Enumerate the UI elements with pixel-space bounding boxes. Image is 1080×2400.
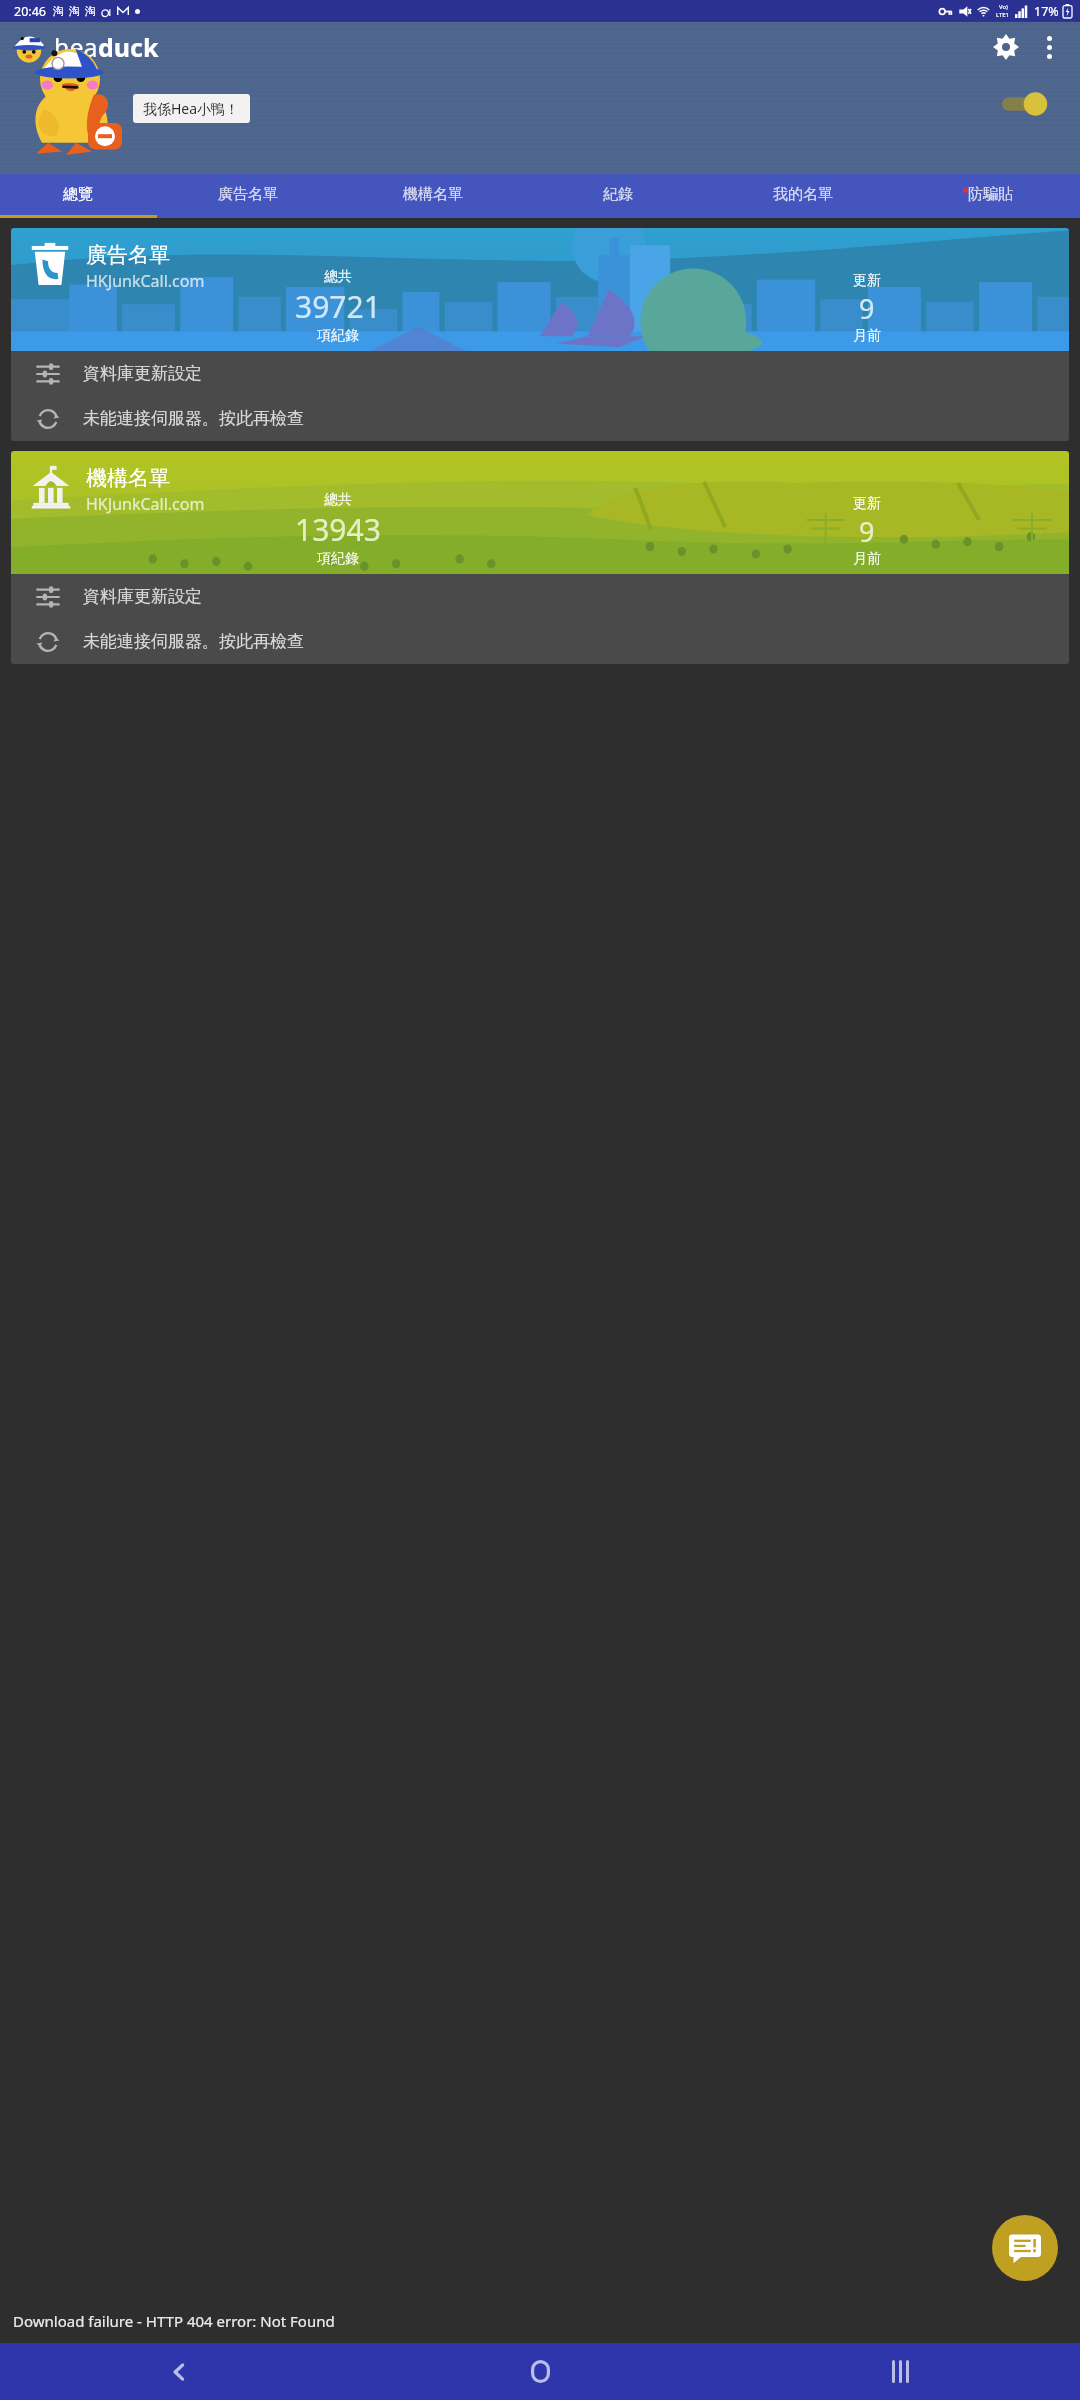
staticText: 資料庫更新設定	[83, 363, 202, 384]
staticText: LTE1	[996, 11, 1010, 19]
staticText: 更新	[853, 495, 881, 513]
staticText: 39721	[295, 286, 381, 327]
button[interactable]: 防騙貼	[895, 174, 1080, 215]
staticText: 資料庫更新設定	[83, 586, 202, 607]
staticText: Vo)	[999, 3, 1008, 11]
button[interactable]: Feedback	[992, 2215, 1058, 2281]
staticText: 20:46	[14, 3, 46, 20]
button[interactable]: More options	[1032, 30, 1066, 64]
button[interactable]: 機構名單	[11, 451, 1069, 574]
button[interactable]: Home	[360, 2343, 720, 2400]
button[interactable]: 廣告名單	[156, 174, 340, 215]
staticText: HKJunkCall.com	[86, 493, 205, 515]
staticText: 月前	[853, 327, 881, 345]
staticText: 淘	[53, 4, 64, 18]
button[interactable]: 資料庫更新設定	[11, 574, 1069, 619]
staticText: HKJunkCall.com	[86, 270, 205, 292]
staticText: 廣告名單	[86, 242, 170, 268]
staticText: 廣告名單	[218, 185, 278, 204]
staticText: 總共	[324, 491, 352, 509]
staticText: 機構名單	[403, 185, 463, 204]
staticText: 項紀錄	[317, 327, 359, 345]
staticText: 17%	[1034, 3, 1059, 20]
staticText: 紀錄	[603, 185, 633, 204]
staticText: 總覽	[63, 185, 93, 204]
staticText: 13943	[295, 509, 381, 550]
staticText: 淘	[69, 4, 80, 18]
staticText: 淘	[85, 4, 96, 18]
staticText: 未能連接伺服器。按此再檢查	[83, 631, 304, 652]
button[interactable]: Settings	[986, 27, 1026, 67]
staticText: 9	[859, 290, 875, 327]
button[interactable]: 我的名單	[710, 174, 895, 215]
button[interactable]: Toggle protection	[1002, 90, 1046, 118]
staticText: 我的名單	[773, 185, 833, 204]
button[interactable]: 未能連接伺服器。按此再檢查	[11, 396, 1069, 441]
staticText: 月前	[853, 550, 881, 568]
staticText: duck	[98, 30, 159, 64]
staticText: 項紀錄	[317, 550, 359, 568]
staticText: 防騙貼	[968, 185, 1013, 204]
button[interactable]: 資料庫更新設定	[11, 351, 1069, 396]
staticText: 更新	[853, 272, 881, 290]
button[interactable]: 紀錄	[525, 174, 710, 215]
button[interactable]: 總覽	[0, 174, 156, 215]
button[interactable]: Back	[0, 2343, 360, 2400]
staticText: 9	[859, 513, 875, 550]
button[interactable]: 機構名單	[340, 174, 525, 215]
staticText: Download failure - HTTP 404 error: Not F…	[13, 2311, 335, 2331]
staticText: 總共	[324, 268, 352, 286]
button[interactable]: 廣告名單	[11, 228, 1069, 351]
staticText: hea	[54, 30, 98, 64]
staticText: 機構名單	[86, 465, 170, 491]
button[interactable]: 未能連接伺服器。按此再檢查	[11, 619, 1069, 664]
staticText: 我係Hea小鴨！	[143, 99, 240, 118]
staticText: 未能連接伺服器。按此再檢查	[83, 408, 304, 429]
button[interactable]: Recent apps	[720, 2343, 1080, 2400]
